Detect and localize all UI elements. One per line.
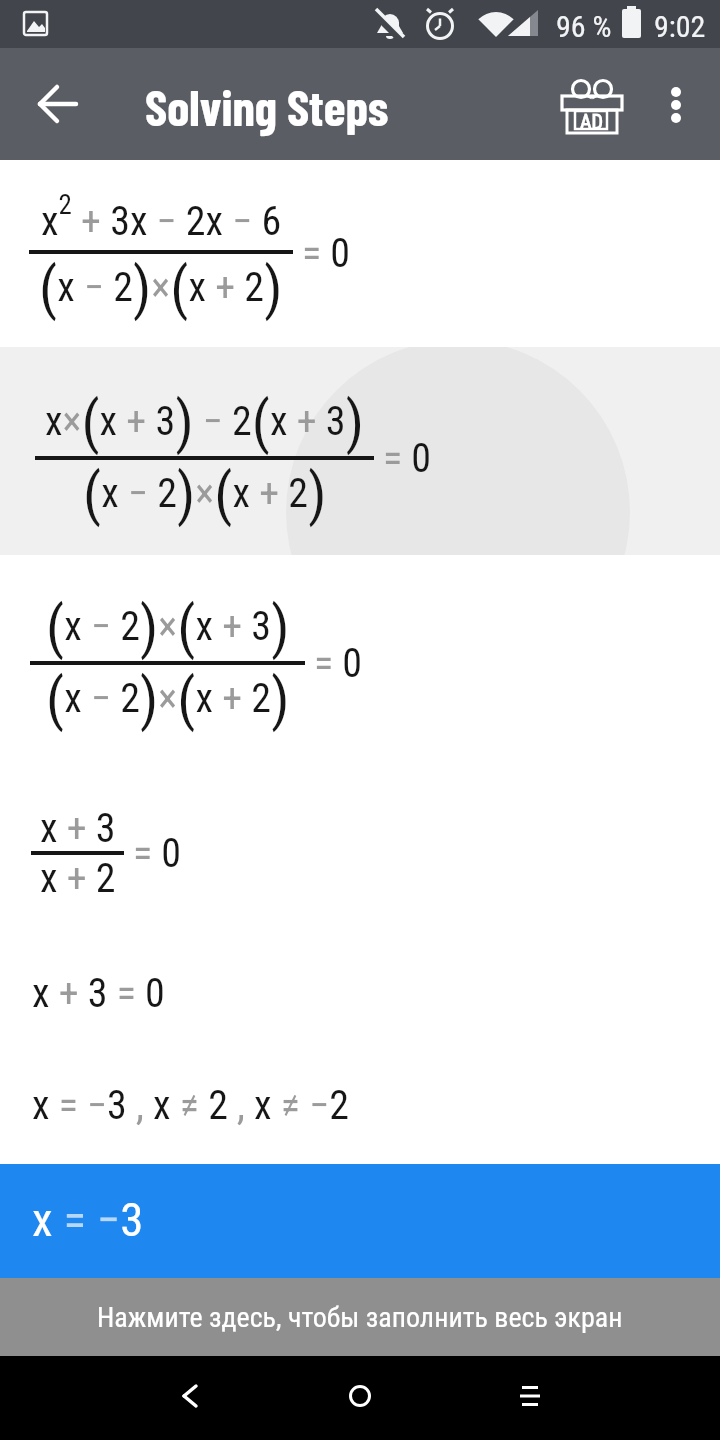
button[interactable] — [500, 1366, 560, 1426]
staticText: 9:02 — [654, 9, 706, 44]
staticText: x + 2 — [40, 855, 116, 901]
staticText: (x − 2)×(x + 2) — [83, 460, 327, 528]
staticText: = 0 — [133, 830, 182, 877]
staticText: AD — [580, 110, 603, 133]
button[interactable]: Нажмите здесь, чтобы заполнить весь экра… — [0, 1278, 720, 1356]
staticText: (x − 2)×(x + 2) — [46, 665, 290, 733]
staticText: 96 % — [556, 9, 612, 44]
staticText: Нажмите здесь, чтобы заполнить весь экра… — [97, 1301, 623, 1334]
staticText: = 0 — [383, 435, 432, 482]
staticText: (x − 2)×(x + 2) — [39, 254, 283, 322]
button[interactable] — [656, 80, 696, 120]
staticText: x + 3 = 0 — [32, 970, 165, 1017]
staticText: x = −3 , x ≠ 2 , x ≠ −2 — [32, 1082, 349, 1129]
staticText: = 0 — [314, 640, 363, 687]
button[interactable] — [36, 82, 80, 126]
staticText: (x − 2)×(x + 3) — [46, 593, 290, 661]
staticText: x2 + 3x − 2x − 6 — [41, 189, 282, 245]
staticText: x + 3 — [40, 805, 116, 851]
button[interactable] — [330, 1366, 390, 1426]
button[interactable]: x = −3 — [0, 1164, 720, 1278]
staticText: x×(x + 3) − 2(x + 3) — [45, 388, 364, 456]
staticText: x = −3 — [32, 1192, 144, 1247]
button[interactable]: AD — [552, 70, 632, 150]
staticText: Solving Steps — [145, 76, 389, 136]
button[interactable] — [160, 1366, 220, 1426]
staticText: = 0 — [302, 230, 351, 277]
